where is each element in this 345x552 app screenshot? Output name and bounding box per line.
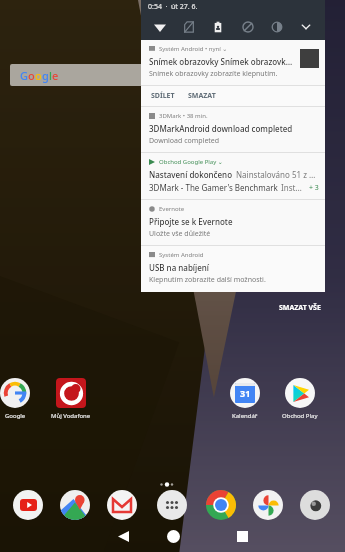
button[interactable]: App — [155, 488, 189, 522]
button[interactable]: G — [10, 64, 310, 86]
staticText: Snímek obrazovky Snímek obrazovky p.. — [149, 56, 295, 67]
staticText: 3DMark • 38 min. — [159, 112, 208, 120]
staticText: Připojte se k Evernote — [149, 216, 233, 227]
staticText: Google — [5, 412, 26, 420]
button[interactable]: Google — [0, 378, 37, 420]
staticText: Snímek obrazovky zobrazíte klepnutím. — [149, 69, 278, 79]
staticText: Kalendář — [232, 412, 258, 420]
button[interactable]: Systém Android — [141, 246, 325, 292]
button[interactable]: SMAZAT VŠE — [275, 299, 325, 317]
staticText: G — [20, 68, 28, 83]
button[interactable]: Auto rotate — [266, 16, 288, 38]
button[interactable]: Recent apps — [222, 520, 262, 552]
staticText: 3DMark - The Gamer's Benchmark — [149, 182, 278, 193]
button[interactable]: Evernote — [141, 200, 325, 245]
staticText: Můj Vodafone — [51, 412, 91, 420]
button[interactable]: Wi-Fi — [149, 16, 171, 38]
button[interactable]: Můj Vodafone — [49, 378, 93, 420]
staticText: l — [49, 68, 52, 83]
staticText: Obchod Play — [282, 412, 318, 420]
button[interactable]: Back — [103, 520, 143, 552]
staticText: Klepnutím zobrazíte další možnosti. — [149, 275, 266, 285]
button[interactable]: App — [105, 488, 139, 522]
button[interactable]: SMAZAT — [186, 88, 218, 104]
staticText: Nastavení dokončeno — [149, 169, 233, 180]
staticText: 3DMarkAndroid download completed — [149, 123, 293, 134]
button[interactable]: SDÍLET — [149, 88, 177, 104]
staticText: o — [28, 68, 35, 83]
staticText: SMAZAT — [188, 91, 216, 101]
staticText: g — [42, 68, 49, 83]
button[interactable]: App — [251, 488, 285, 522]
staticText: SDÍLET — [151, 91, 175, 101]
staticText: USB na nabíjení — [149, 262, 209, 273]
button[interactable]: App — [58, 488, 92, 522]
staticText: Nainstalováno 51 z 51 a... — [236, 169, 319, 180]
button[interactable]: Expand — [295, 16, 317, 38]
button[interactable]: Battery saver — [207, 16, 229, 38]
button[interactable]: Obchod Play — [278, 378, 322, 420]
staticText: Systém Android • nyní ⌄ — [159, 45, 228, 53]
button[interactable]: Home — [153, 520, 193, 552]
staticText: 31 — [240, 387, 251, 399]
staticText: Evernote — [159, 205, 185, 213]
staticText: Systém Android — [159, 251, 204, 259]
staticText: SMAZAT VŠE — [279, 303, 321, 313]
staticText: Download completed — [149, 136, 220, 146]
button[interactable]: App — [204, 488, 238, 522]
staticText: 0:54 · út 27. 6. — [148, 2, 198, 12]
button[interactable]: Do not disturb — [237, 16, 259, 38]
staticText: Instalac... — [281, 182, 306, 193]
button[interactable]: Mobile data off — [178, 16, 200, 38]
staticText: + 3 — [309, 183, 319, 193]
staticText: Uložte vše důležité — [149, 229, 211, 239]
staticText: e — [52, 68, 59, 83]
button[interactable]: 3DMark • 38 min. — [141, 107, 325, 152]
button[interactable]: 31 — [223, 378, 267, 420]
staticText: o — [35, 68, 42, 83]
button[interactable]: App — [298, 488, 332, 522]
button[interactable]: App — [11, 488, 45, 522]
button[interactable]: Obchod Google Play ⌄ — [141, 153, 325, 199]
staticText: Obchod Google Play ⌄ — [159, 158, 223, 166]
button[interactable]: Systém Android • nyní ⌄ — [141, 40, 325, 106]
